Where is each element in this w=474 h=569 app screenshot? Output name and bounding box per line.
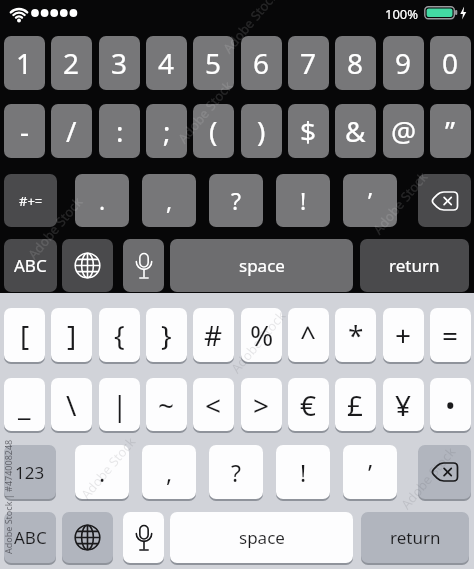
button[interactable]: ? bbox=[209, 445, 263, 499]
button[interactable]: $ bbox=[288, 104, 329, 158]
button[interactable] bbox=[418, 174, 471, 227]
button[interactable]: ; bbox=[146, 104, 187, 158]
button[interactable]: | bbox=[99, 378, 140, 431]
staticText: ? bbox=[231, 185, 241, 216]
button[interactable]: #+= bbox=[4, 174, 57, 227]
button[interactable]: [ bbox=[4, 308, 45, 362]
button[interactable]: 9 bbox=[383, 36, 424, 90]
staticText: 2 bbox=[63, 44, 80, 82]
button[interactable]: , bbox=[142, 445, 196, 499]
button[interactable]: ( bbox=[193, 104, 234, 158]
staticText: ’ bbox=[368, 457, 373, 488]
button[interactable]: 3 bbox=[99, 36, 140, 90]
staticText: ^ bbox=[300, 316, 317, 354]
staticText: < bbox=[205, 386, 222, 424]
staticText: % bbox=[250, 316, 274, 354]
button[interactable]: \ bbox=[51, 378, 92, 431]
staticText: / bbox=[66, 112, 77, 150]
button[interactable]: ] bbox=[51, 308, 92, 362]
button[interactable]: . bbox=[75, 174, 129, 227]
button[interactable]: 0 bbox=[430, 36, 471, 90]
button[interactable]: ^ bbox=[288, 308, 329, 362]
button[interactable]: % bbox=[241, 308, 282, 362]
staticText: • bbox=[445, 386, 456, 424]
button[interactable]: return bbox=[361, 512, 469, 563]
button[interactable] bbox=[123, 512, 164, 563]
staticText: @ bbox=[391, 112, 417, 150]
button[interactable]: : bbox=[99, 104, 140, 158]
staticText: ABC bbox=[14, 254, 47, 277]
button[interactable]: { bbox=[99, 308, 140, 362]
button[interactable]: ! bbox=[276, 174, 330, 227]
staticText: return bbox=[390, 526, 441, 549]
staticText: space bbox=[239, 254, 285, 277]
staticText: Adobe Stock bbox=[369, 168, 431, 238]
button[interactable]: # bbox=[193, 308, 234, 362]
button[interactable]: . bbox=[75, 445, 129, 499]
button[interactable] bbox=[62, 239, 113, 292]
staticText: . bbox=[99, 185, 106, 216]
button[interactable]: 2 bbox=[51, 36, 92, 90]
staticText: ; bbox=[163, 112, 171, 150]
button[interactable]: , bbox=[142, 174, 196, 227]
button[interactable]: & bbox=[335, 104, 376, 158]
button[interactable]: ABC bbox=[4, 239, 57, 292]
staticText: 0 bbox=[442, 44, 459, 82]
staticText: Adobe Stock | #474008248 bbox=[2, 439, 14, 554]
staticText: [ bbox=[20, 316, 30, 354]
staticText: 5 bbox=[205, 44, 222, 82]
staticText: ~ bbox=[158, 386, 175, 424]
button[interactable] bbox=[62, 512, 113, 563]
button[interactable]: * bbox=[335, 308, 376, 362]
button[interactable]: ? bbox=[209, 174, 263, 227]
staticText: Adobe Stock bbox=[77, 433, 139, 503]
staticText: + bbox=[395, 316, 412, 354]
staticText: > bbox=[253, 386, 270, 424]
button[interactable]: return bbox=[360, 239, 469, 292]
staticText: : bbox=[116, 112, 124, 150]
button[interactable]: / bbox=[51, 104, 92, 158]
button[interactable]: - bbox=[4, 104, 45, 158]
button[interactable]: = bbox=[430, 308, 471, 362]
button[interactable]: + bbox=[383, 308, 424, 362]
button[interactable]: } bbox=[146, 308, 187, 362]
button[interactable]: @ bbox=[383, 104, 424, 158]
button[interactable]: < bbox=[193, 378, 234, 431]
button[interactable]: ” bbox=[430, 104, 471, 158]
staticText: ¥ bbox=[395, 386, 412, 424]
button[interactable]: ’ bbox=[343, 174, 397, 227]
button[interactable]: 1 bbox=[4, 36, 45, 90]
staticText: ) bbox=[257, 112, 266, 150]
button[interactable]: ! bbox=[276, 445, 330, 499]
button[interactable] bbox=[123, 239, 164, 292]
staticText: ! bbox=[300, 457, 307, 488]
staticText: & bbox=[345, 112, 366, 150]
button[interactable]: 6 bbox=[241, 36, 282, 90]
button[interactable]: ABC bbox=[4, 512, 56, 563]
staticText: #+= bbox=[19, 192, 43, 210]
button[interactable]: ’ bbox=[343, 445, 397, 499]
button[interactable]: space bbox=[170, 512, 353, 563]
button[interactable]: ~ bbox=[146, 378, 187, 431]
staticText: = bbox=[442, 316, 459, 354]
staticText: ( bbox=[209, 112, 218, 150]
button[interactable]: 4 bbox=[146, 36, 187, 90]
button[interactable]: 5 bbox=[193, 36, 234, 90]
button[interactable]: space bbox=[170, 239, 353, 292]
button[interactable]: ) bbox=[241, 104, 282, 158]
staticText: ABC bbox=[14, 526, 47, 549]
button[interactable]: 123 bbox=[4, 445, 56, 499]
button[interactable]: 7 bbox=[288, 36, 329, 90]
button[interactable]: > bbox=[241, 378, 282, 431]
staticText: space bbox=[239, 526, 285, 549]
button[interactable]: 8 bbox=[335, 36, 376, 90]
button[interactable]: ¥ bbox=[383, 378, 424, 431]
staticText: 3 bbox=[111, 44, 128, 82]
staticText: * bbox=[348, 316, 364, 354]
button[interactable]: £ bbox=[335, 378, 376, 431]
button[interactable] bbox=[418, 445, 471, 499]
button[interactable]: € bbox=[288, 378, 329, 431]
button[interactable]: _ bbox=[4, 378, 45, 431]
staticText: ” bbox=[445, 112, 456, 150]
button[interactable]: • bbox=[430, 378, 471, 431]
